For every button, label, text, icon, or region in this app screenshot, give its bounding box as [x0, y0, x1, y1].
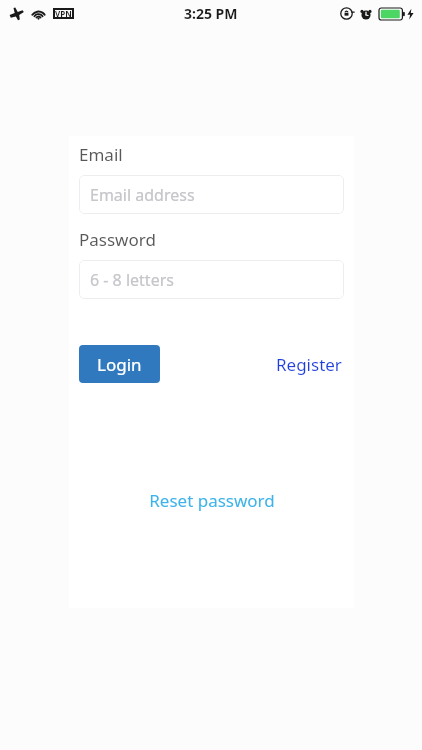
staticText: Reset password	[149, 489, 275, 512]
staticText: 6 - 8 letters	[90, 269, 174, 291]
staticText: Email	[79, 143, 123, 166]
other: Battery	[379, 8, 405, 20]
button[interactable]: Email address	[79, 175, 344, 214]
button[interactable]: Reset password	[143, 485, 281, 516]
staticText: 3:25 PM	[184, 4, 238, 23]
button[interactable]: Register	[274, 345, 344, 383]
other: VPN	[55, 8, 72, 19]
other: Alarm	[360, 8, 372, 20]
other: Wi-Fi	[31, 8, 46, 20]
button[interactable]: 6 - 8 letters	[79, 260, 344, 299]
staticText: VPN	[55, 8, 72, 19]
staticText: Email address	[90, 184, 195, 206]
button[interactable]: Login	[79, 345, 160, 383]
staticText: Register	[276, 353, 342, 376]
other: Airplane mode	[9, 6, 24, 21]
staticText: Login	[97, 353, 142, 376]
staticText: Password	[79, 228, 156, 251]
other: Rotation lock	[340, 7, 353, 20]
